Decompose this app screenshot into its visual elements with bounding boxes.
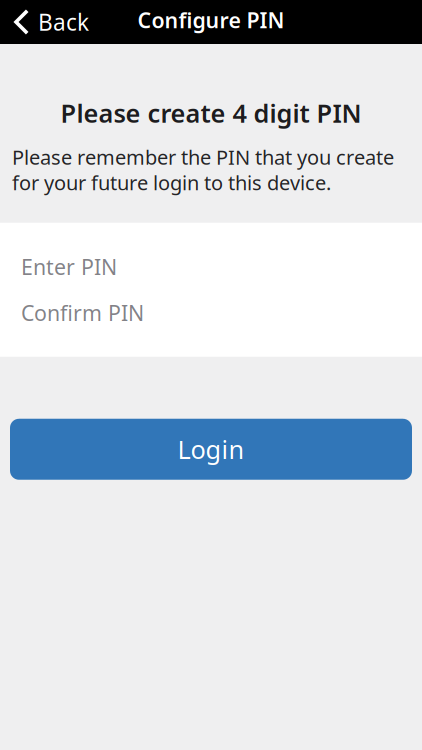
button[interactable]: Back <box>0 0 101 44</box>
staticText: Please remember the PIN that you create <box>12 144 394 170</box>
staticText: for your future login to this device. <box>12 169 331 196</box>
button[interactable]: Enter PIN <box>0 244 422 290</box>
staticText: Login <box>177 432 244 466</box>
staticText: Configure PIN <box>137 6 284 34</box>
button[interactable]: Login <box>10 419 412 480</box>
button[interactable]: Confirm PIN <box>0 290 422 336</box>
staticText: Please create 4 digit PIN <box>60 96 361 130</box>
staticText: Enter PIN <box>21 253 117 281</box>
staticText: Confirm PIN <box>21 299 144 327</box>
staticText: Back <box>38 7 89 37</box>
